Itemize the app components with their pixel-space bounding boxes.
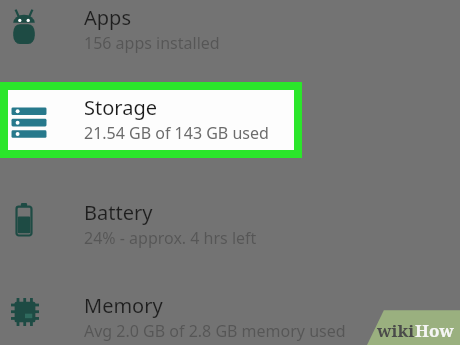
other: Battery icon (13, 202, 35, 238)
staticText: Avg 2.0 GB of 2.8 GB memory used (84, 320, 346, 342)
other: Apps icon (9, 8, 39, 48)
button[interactable]: Apps icon (0, 0, 460, 62)
staticText: Memory (84, 292, 163, 319)
button[interactable]: Storage icon (8, 90, 294, 150)
staticText: 21.54 GB of 143 GB used (84, 122, 269, 144)
button[interactable]: Memory icon (0, 289, 460, 345)
other: Storage icon (10, 101, 48, 139)
staticText: Battery (84, 199, 153, 226)
staticText: Apps (84, 4, 131, 31)
staticText: 156 apps installed (84, 32, 220, 54)
staticText: wiki (377, 319, 415, 342)
staticText: How (415, 319, 454, 342)
staticText: Storage (84, 94, 157, 121)
other: Memory icon (11, 298, 39, 326)
staticText: 24% - approx. 4 hrs left (84, 227, 257, 249)
button[interactable]: Battery icon (0, 194, 460, 260)
